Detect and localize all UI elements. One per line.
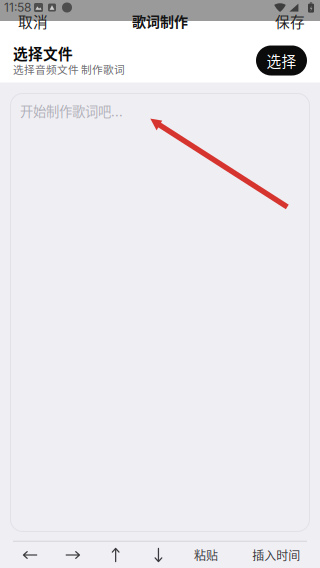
button[interactable]: 取消 — [0, 4, 60, 38]
staticText: 粘贴 — [194, 546, 218, 564]
staticText: 保存 — [275, 10, 305, 32]
button[interactable]: 插入时间 — [232, 542, 320, 568]
staticText: 取消 — [18, 10, 48, 32]
staticText: 11:58 — [4, 0, 31, 15]
button[interactable]: Move up — [94, 542, 137, 568]
staticText: 开始制作歌词吧... — [20, 101, 123, 120]
button[interactable]: Move left — [9, 542, 51, 568]
button[interactable]: Move down — [137, 542, 180, 568]
staticText: 选择音频文件 制作歌词 — [13, 61, 125, 77]
staticText: 选择 — [266, 50, 296, 71]
staticText: 插入时间 — [252, 546, 300, 564]
button[interactable]: 选择 — [256, 45, 307, 75]
button[interactable]: 保存 — [263, 4, 320, 38]
button[interactable]: Move right — [51, 542, 94, 568]
button[interactable]: 粘贴 — [180, 542, 232, 568]
staticText: 选择文件 — [13, 42, 73, 64]
staticText: 歌词制作 — [132, 11, 188, 31]
